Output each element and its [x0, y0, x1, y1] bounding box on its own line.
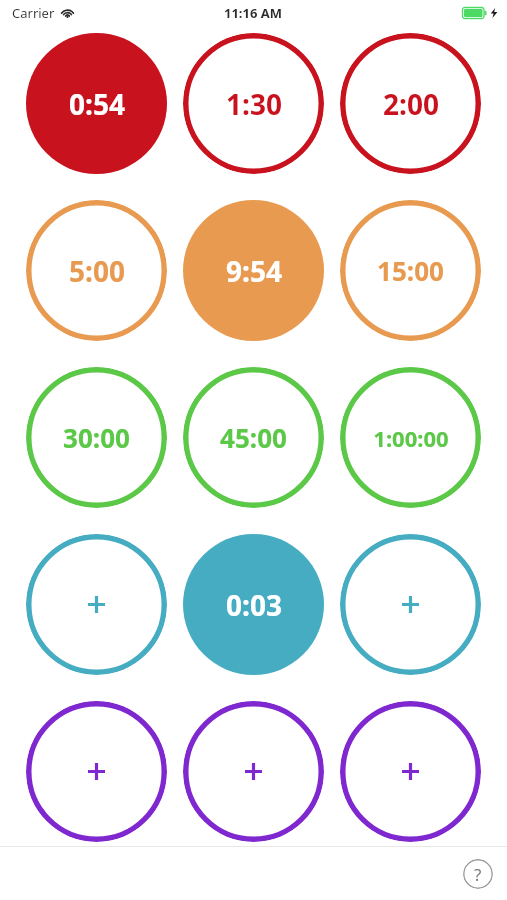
staticText: 9:54: [226, 252, 282, 290]
staticText: 0:54: [69, 85, 125, 123]
other: Add timer: [88, 763, 105, 780]
button[interactable]: Add timer: [340, 701, 481, 842]
staticText: 15:00: [377, 253, 444, 288]
button[interactable]: 9:54: [183, 200, 324, 341]
button[interactable]: 1:30: [183, 33, 324, 174]
other: Add timer: [88, 596, 105, 613]
button[interactable]: 2:00: [340, 33, 481, 174]
other: Add timer: [402, 596, 419, 613]
button[interactable]: 15:00: [340, 200, 481, 341]
staticText: 0:03: [226, 586, 282, 624]
staticText: 11:16 AM: [224, 4, 283, 22]
button[interactable]: 45:00: [183, 367, 324, 508]
button[interactable]: 1:00:00: [340, 367, 481, 508]
button[interactable]: 0:03: [183, 534, 324, 675]
staticText: 2:00: [383, 85, 439, 123]
button[interactable]: Add timer: [26, 534, 167, 675]
button[interactable]: 30:00: [26, 367, 167, 508]
staticText: 45:00: [220, 420, 287, 455]
staticText: 30:00: [63, 420, 130, 455]
button[interactable]: Add timer: [183, 701, 324, 842]
staticText: Carrier: [12, 4, 55, 22]
staticText: 5:00: [69, 252, 125, 290]
button[interactable]: Add timer: [26, 701, 167, 842]
staticText: 1:30: [226, 85, 282, 123]
staticText: ?: [474, 863, 482, 886]
button[interactable]: Add timer: [340, 534, 481, 675]
button[interactable]: 0:54: [26, 33, 167, 174]
other: Add timer: [402, 763, 419, 780]
button[interactable]: Help: [463, 859, 493, 889]
other: Add timer: [245, 763, 262, 780]
staticText: 1:00:00: [373, 423, 449, 453]
button[interactable]: 5:00: [26, 200, 167, 341]
